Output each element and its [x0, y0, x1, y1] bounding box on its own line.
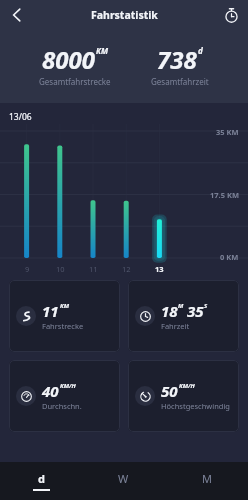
staticText: 13 — [155, 264, 164, 274]
staticText: 11 — [89, 264, 98, 274]
staticText: 738 — [157, 43, 197, 76]
staticText: d — [198, 45, 203, 56]
staticText: W — [118, 471, 129, 486]
button[interactable]: Distance — [9, 280, 120, 352]
staticText: 13/06 — [9, 111, 32, 123]
staticText: KM/H — [60, 382, 76, 390]
staticText: 10 — [56, 264, 65, 274]
button[interactable]: M — [165, 462, 248, 500]
button[interactable]: Stopwatch — [214, 0, 248, 30]
staticText: M — [202, 471, 212, 486]
staticText: Fahrstatistik — [91, 8, 158, 22]
staticText: Durchschn. — [42, 401, 82, 411]
staticText: d — [38, 471, 45, 486]
staticText: KM/H — [179, 382, 195, 390]
button[interactable]: W — [82, 462, 165, 500]
staticText: 18 — [161, 301, 178, 321]
staticText: Gesamtfahrzeit — [151, 76, 209, 87]
staticText: S — [204, 302, 208, 310]
staticText: Höchstgeschwindigk — [161, 401, 232, 411]
button[interactable]: Max speed — [128, 360, 239, 432]
button[interactable]: Back — [0, 0, 34, 30]
staticText: M — [178, 302, 184, 310]
button[interactable]: Ride time — [128, 280, 239, 352]
staticText: 50 — [161, 381, 178, 401]
staticText: 17.5 KM — [210, 190, 239, 200]
staticText: 8000 — [42, 43, 95, 76]
staticText: 9 — [25, 264, 30, 274]
staticText: Fahrzeit — [161, 321, 190, 331]
staticText: Gesamtfahrstrecke — [39, 76, 111, 87]
staticText: 40 — [42, 381, 59, 401]
staticText: 11 — [42, 301, 59, 321]
staticText: 0 KM — [220, 252, 239, 262]
staticText: KM — [60, 302, 69, 310]
button[interactable]: d — [0, 462, 82, 500]
other: Ride time — [135, 306, 155, 326]
staticText: Fahrstrecke — [42, 321, 84, 331]
other: Distance — [16, 306, 36, 326]
staticText: KM — [96, 45, 108, 56]
button[interactable]: Average speed — [9, 360, 120, 432]
other: Average speed — [16, 386, 36, 406]
staticText: 12 — [122, 264, 131, 274]
other: Max speed — [135, 386, 155, 406]
staticText: 35 — [187, 301, 204, 321]
staticText: 35 KM — [216, 127, 239, 137]
